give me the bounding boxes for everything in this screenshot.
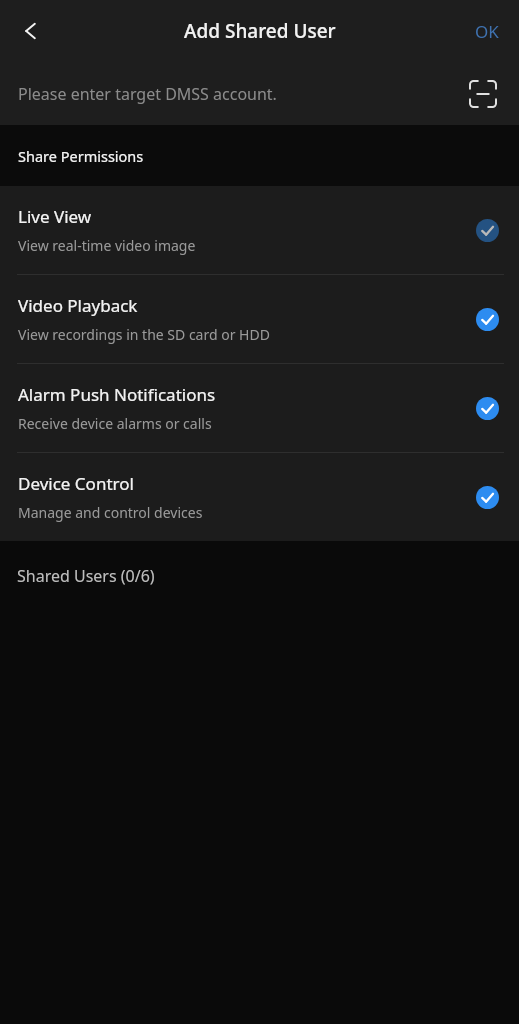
staticText: Manage and control devices [18,503,203,522]
other: Alarm Push Notifications enabled [475,396,499,420]
button[interactable]: Scan QR code [461,72,505,116]
staticText: OK [475,20,499,43]
staticText: Device Control [18,472,134,495]
button[interactable]: Live View [0,186,519,274]
staticText: Shared Users (0/6) [17,565,155,587]
staticText: Live View [18,205,92,228]
other: Live View enabled, locked [475,218,499,242]
staticText: Please enter target DMSS account. [18,83,277,105]
button[interactable]: OK [455,0,519,62]
staticText: Share Permissions [18,146,144,166]
staticText: Alarm Push Notifications [18,383,216,406]
staticText: View recordings in the SD card or HDD [18,325,270,344]
button[interactable]: Alarm Push Notifications [0,364,519,452]
button[interactable]: Device Control [0,453,519,541]
button[interactable]: Video Playback [0,275,519,363]
button[interactable]: Please enter target DMSS account. [0,62,519,125]
staticText: View real-time video image [18,236,196,255]
other: Device Control enabled [475,485,499,509]
staticText: Receive device alarms or calls [18,414,212,433]
staticText: Video Playback [18,294,138,317]
other: Video Playback enabled [475,307,499,331]
button[interactable]: Back [0,0,62,62]
staticText: Add Shared User [184,18,336,44]
